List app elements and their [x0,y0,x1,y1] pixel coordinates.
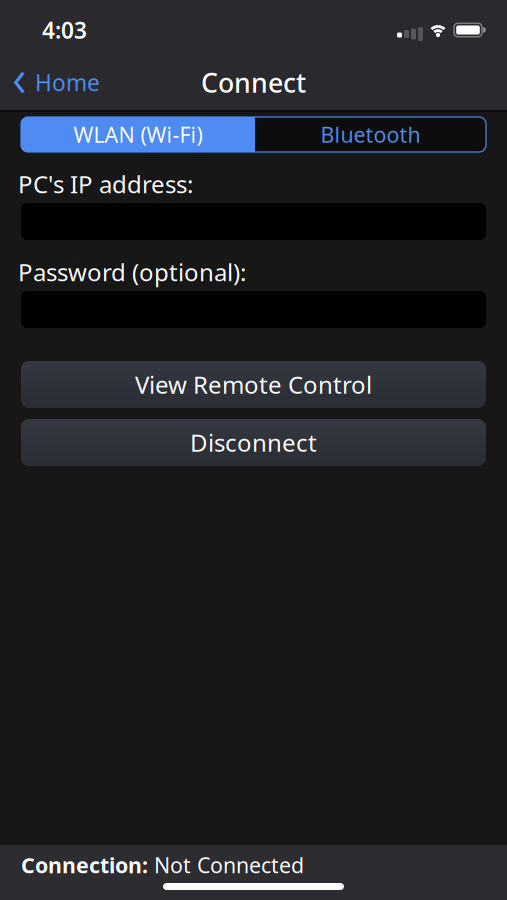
staticText: Password (optional): [18,256,246,288]
staticText: 4:03 [42,15,87,45]
button[interactable]: Back to Home [0,67,100,97]
staticText: Connect [201,65,306,100]
staticText: PC's IP address: [18,168,193,200]
button[interactable]: Bluetooth [255,117,486,152]
staticText: Bluetooth [320,120,420,149]
staticText: WLAN (Wi-Fi) [73,120,202,149]
staticText: Disconnect [190,427,317,458]
staticText: Home [35,67,100,97]
button[interactable]: View Remote Control [21,361,486,408]
staticText: View Remote Control [135,369,372,400]
button[interactable]: WLAN (Wi-Fi) [21,117,255,152]
staticText: Connection: Not Connected [21,851,304,879]
button[interactable]: Disconnect [21,419,486,466]
